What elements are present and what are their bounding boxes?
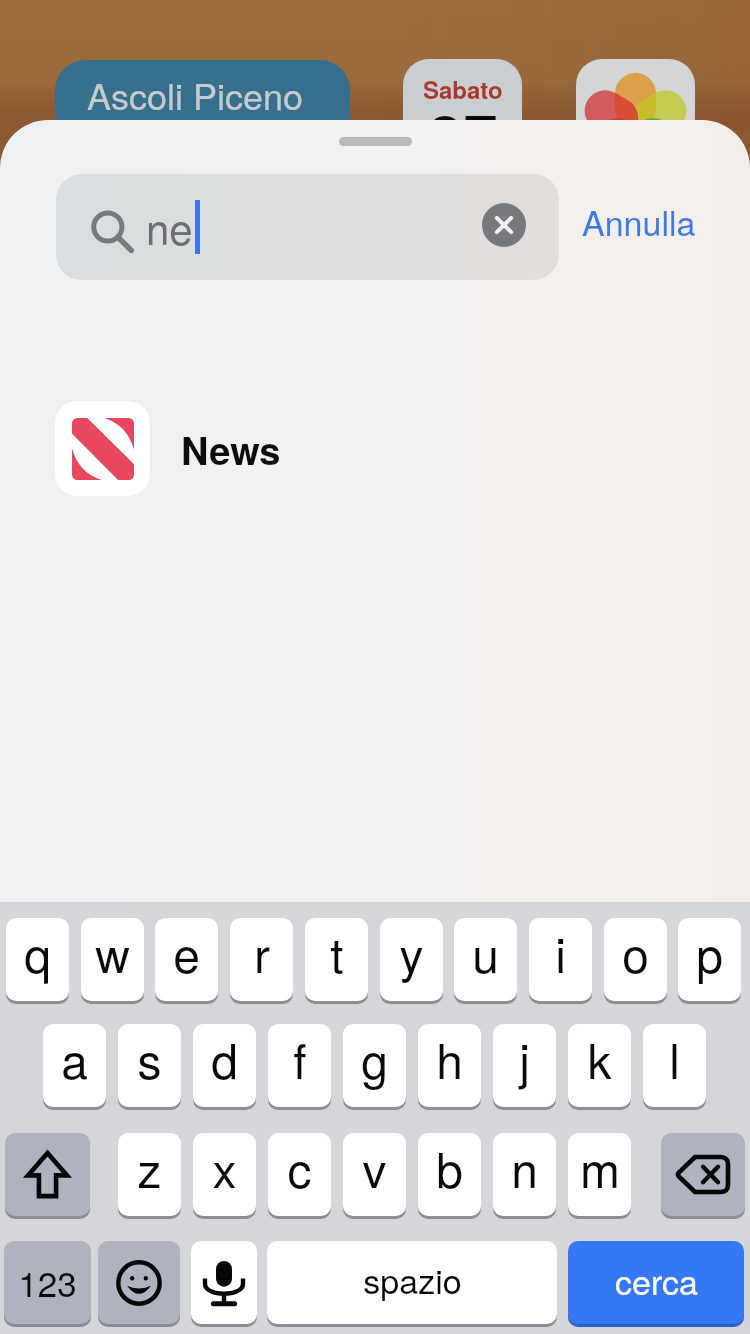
button[interactable]: 123 (4, 1241, 91, 1324)
staticText: b (436, 1133, 463, 1202)
button[interactable]: ne (56, 174, 559, 280)
button[interactable]: spazio (267, 1241, 557, 1324)
button[interactable]: q (6, 918, 69, 1001)
staticText: 27 (427, 88, 499, 132)
staticText: f (293, 1024, 307, 1093)
staticText: m (580, 1133, 620, 1202)
button[interactable]: cerca (568, 1241, 744, 1324)
staticText: ne (146, 197, 193, 257)
button[interactable]: a (43, 1024, 106, 1107)
button[interactable]: o (604, 918, 667, 1001)
button[interactable]: h (418, 1024, 481, 1107)
button[interactable]: Annulla (558, 174, 720, 268)
staticText: w (95, 918, 130, 987)
staticText: p (696, 918, 723, 987)
button[interactable]: l (643, 1024, 706, 1107)
button[interactable]: i (529, 918, 592, 1001)
staticText: s (137, 1024, 162, 1093)
staticText: q (24, 918, 51, 987)
staticText: o (622, 918, 649, 987)
staticText: i (555, 918, 566, 987)
button[interactable]: Clear search (482, 203, 526, 247)
button[interactable]: c (268, 1133, 331, 1216)
button[interactable]: u (454, 918, 517, 1001)
button[interactable]: m (568, 1133, 631, 1216)
button[interactable]: Dictation (191, 1241, 257, 1324)
staticText: z (137, 1133, 162, 1202)
staticText: c (287, 1133, 312, 1202)
staticText: l (669, 1024, 680, 1093)
staticText: n (511, 1133, 538, 1202)
button[interactable]: s (118, 1024, 181, 1107)
staticText: Annulla (582, 197, 696, 246)
button[interactable]: p (678, 918, 741, 1001)
staticText: d (211, 1024, 238, 1093)
button[interactable]: b (418, 1133, 481, 1216)
button[interactable]: f (268, 1024, 331, 1107)
button[interactable]: Emoji (98, 1241, 180, 1324)
staticText: t (330, 918, 344, 987)
button[interactable]: g (343, 1024, 406, 1107)
staticText: Sabato (423, 72, 503, 106)
staticText: u (472, 918, 499, 987)
staticText: k (587, 1024, 612, 1093)
staticText: Ascoli Piceno (87, 69, 304, 121)
button[interactable]: y (380, 918, 443, 1001)
staticText: x (212, 1133, 237, 1202)
button[interactable]: j (493, 1024, 556, 1107)
button[interactable]: News (0, 401, 750, 496)
staticText: g (361, 1024, 388, 1093)
button[interactable]: v (343, 1133, 406, 1216)
button[interactable]: n (493, 1133, 556, 1216)
button[interactable]: d (193, 1024, 256, 1107)
button[interactable]: r (230, 918, 293, 1001)
button[interactable]: x (193, 1133, 256, 1216)
staticText: r (254, 918, 270, 987)
button[interactable]: k (568, 1024, 631, 1107)
button[interactable]: z (118, 1133, 181, 1216)
staticText: spazio (363, 1255, 462, 1304)
staticText: e (173, 918, 200, 987)
button[interactable]: t (305, 918, 368, 1001)
staticText: cerca (615, 1256, 698, 1305)
staticText: a (61, 1024, 88, 1093)
staticText: v (362, 1133, 387, 1202)
staticText: j (519, 1024, 530, 1093)
button[interactable]: e (155, 918, 218, 1001)
button[interactable]: w (81, 918, 144, 1001)
staticText: y (399, 918, 424, 987)
staticText: h (436, 1024, 463, 1093)
button[interactable]: Backspace (661, 1133, 745, 1216)
button[interactable]: Shift (5, 1133, 90, 1216)
staticText: 123 (18, 1257, 77, 1307)
staticText: News (181, 422, 281, 476)
